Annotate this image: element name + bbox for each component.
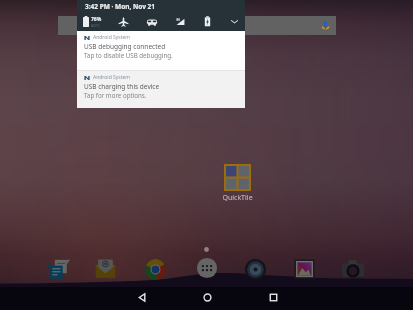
button[interactable]: Photos [293, 258, 316, 281]
button[interactable]: Email [94, 258, 117, 281]
staticText: QuickTile [222, 193, 253, 203]
staticText: Android System [93, 34, 131, 41]
button[interactable]: Android System [77, 71, 245, 108]
staticText: USB debugging connected [84, 42, 166, 51]
staticText: 60°C [91, 23, 100, 28]
button[interactable]: All apps [195, 256, 219, 280]
button[interactable]: Clock [244, 258, 267, 281]
button[interactable]: Home [198, 288, 217, 307]
button[interactable]: Messages [47, 258, 70, 281]
button[interactable]: Chrome [144, 258, 167, 281]
button[interactable]: Voice search [320, 20, 331, 31]
button[interactable]: Camera [341, 258, 365, 282]
staticText: 3:42 PM · Mon, Nov 21 [85, 2, 156, 11]
staticText: USB charging this device [84, 82, 160, 91]
staticText: Tap to disable USB debugging. [84, 51, 173, 59]
staticText: Tap for more options. [84, 91, 147, 99]
button[interactable]: Back [133, 288, 152, 307]
button[interactable]: Android System [77, 31, 245, 70]
button[interactable]: Recents [264, 288, 283, 307]
staticText: 76% [91, 16, 102, 23]
staticText: Android System [93, 74, 131, 81]
button[interactable]: Search [58, 16, 336, 35]
button[interactable]: QuickTile [212, 164, 262, 204]
button[interactable]: Collapse [229, 16, 240, 27]
